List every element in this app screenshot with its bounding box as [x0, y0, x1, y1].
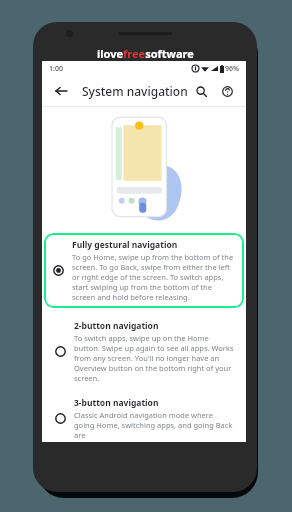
staticText: To switch apps, swipe up on the Home but…	[74, 333, 234, 383]
staticText: 1:00	[49, 64, 63, 74]
button[interactable]: Help	[217, 81, 237, 101]
button[interactable]: Fully gestural navigation	[44, 233, 244, 308]
button[interactable]: 3-button navigation	[42, 395, 246, 442]
staticText: Classic Android navigation mode where go…	[74, 410, 234, 440]
button[interactable]: 2-button navigation	[42, 318, 246, 385]
staticText: 96%	[225, 64, 239, 74]
button[interactable]: Back	[51, 81, 71, 101]
staticText: ilovefreesoftware	[97, 46, 194, 61]
staticText: 2-button navigation	[74, 320, 159, 332]
staticText: System navigation	[82, 83, 188, 99]
staticText: To go Home, swipe up from the bottom of …	[72, 252, 236, 302]
staticText: 3-button navigation	[74, 397, 159, 409]
button[interactable]: Search	[191, 81, 211, 101]
staticText: Fully gestural navigation	[72, 239, 178, 251]
